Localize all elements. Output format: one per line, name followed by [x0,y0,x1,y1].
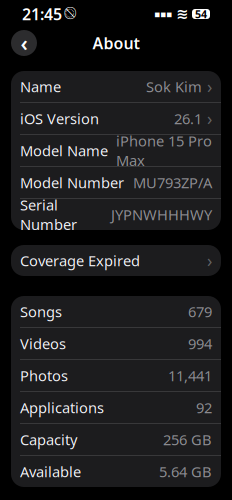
button[interactable]: Model Name [11,135,221,166]
staticText: 11,441 [168,366,212,385]
staticText: Songs [20,302,62,321]
button[interactable]: Back [9,28,39,58]
staticText: Name [20,77,61,96]
button[interactable]: Available [11,456,221,487]
staticText: ≋ [176,6,188,22]
staticText: About [92,32,139,54]
staticText: › [207,75,212,98]
staticText: 26.1 [174,109,202,128]
staticText: Available [20,462,81,481]
button[interactable]: Applications [11,392,221,423]
staticText: MU793ZP/A [133,173,212,192]
staticText: 21:45 [22,3,62,25]
button[interactable]: Name [11,71,221,102]
staticText: Model Number [20,173,124,192]
staticText: 54 [195,7,207,21]
staticText: 994 [188,334,212,353]
staticText: Coverage Expired [20,251,140,270]
staticText: › [207,107,212,130]
staticText: Applications [20,398,104,417]
staticText: › [207,249,212,272]
staticText: Serial Number [20,195,77,234]
staticText: Model Name [20,141,108,160]
staticText: JYPNWHHHWY [111,205,212,224]
staticText: 92 [196,398,212,417]
staticText: 5.64 GB [159,462,212,481]
staticText: Capacity [20,430,77,449]
staticText: ‹ [20,29,27,57]
staticText: Videos [20,334,66,353]
staticText: 679 [188,302,212,321]
staticText: Sok Kim [146,77,202,96]
staticText: Photos [20,366,68,385]
button[interactable]: Model Number [11,167,221,198]
button[interactable]: Serial Number [11,199,221,230]
staticText: ▪▪▪ [154,9,172,19]
staticText: iOS Version [20,109,99,128]
staticText: 256 GB [163,430,212,449]
staticText: iPhone 15 Pro Max [116,131,212,170]
button[interactable]: iOS Version [11,103,221,134]
button[interactable]: Videos [11,328,221,359]
staticText: ⃠ [65,8,75,20]
button[interactable]: Songs [11,296,221,327]
button[interactable]: Coverage Expired [11,245,221,276]
button[interactable]: Photos [11,360,221,391]
button[interactable]: Capacity [11,424,221,455]
